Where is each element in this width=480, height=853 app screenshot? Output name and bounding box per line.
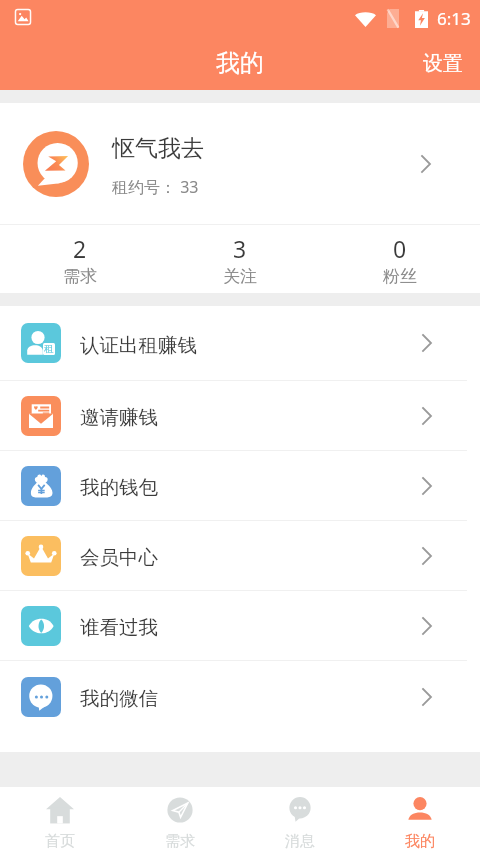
staticText: 粉丝: [383, 266, 417, 287]
staticText: 关注: [223, 266, 257, 287]
button[interactable]: 会员中心: [0, 521, 480, 590]
staticText: 认证出租赚钱: [80, 333, 197, 358]
staticText: 我的钱包: [80, 475, 158, 500]
button[interactable]: 0: [320, 225, 480, 293]
button[interactable]: 首页: [0, 787, 120, 853]
staticText: 会员中心: [80, 545, 158, 570]
staticText: 3: [233, 233, 247, 264]
button[interactable]: 我的钱包: [0, 451, 480, 520]
button[interactable]: 我的: [360, 787, 480, 853]
staticText: 谁看过我: [80, 615, 158, 640]
button[interactable]: 怄气我去: [0, 103, 480, 224]
staticText: 租约号： 33: [112, 176, 199, 198]
staticText: 2: [73, 233, 87, 264]
staticText: 邀请赚钱: [80, 405, 158, 430]
staticText: 租: [44, 343, 54, 355]
staticText: 消息: [285, 832, 315, 851]
button[interactable]: 邀请赚钱: [0, 381, 480, 450]
staticText: 我的微信: [80, 686, 158, 711]
button[interactable]: 需求: [120, 787, 240, 853]
button[interactable]: 谁看过我: [0, 591, 480, 660]
button[interactable]: 消息: [240, 787, 360, 853]
button[interactable]: 3: [160, 225, 320, 293]
staticText: 首页: [45, 832, 75, 851]
button[interactable]: 2: [0, 225, 160, 293]
staticText: 6:13: [437, 7, 471, 30]
staticText: 我的: [216, 48, 264, 78]
staticText: 设置: [423, 51, 463, 76]
staticText: 需求: [63, 266, 97, 287]
staticText: 怄气我去: [112, 134, 204, 163]
staticText: 需求: [165, 832, 195, 851]
staticText: 0: [393, 233, 407, 264]
button[interactable]: 我的微信: [0, 661, 480, 732]
button[interactable]: 租: [0, 306, 480, 380]
staticText: 我的: [405, 832, 435, 851]
button[interactable]: 设置: [404, 36, 480, 90]
